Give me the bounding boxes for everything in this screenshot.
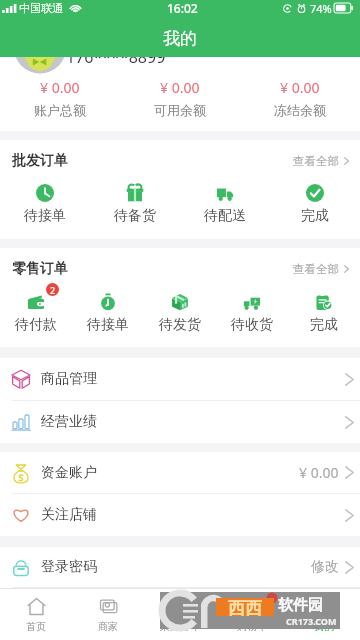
staticText: 商品管理 <box>41 370 97 388</box>
staticText: 商家 <box>98 620 118 633</box>
staticText: 待接单 <box>24 207 66 225</box>
staticText: 待备货 <box>114 207 156 225</box>
staticText: 采购订单 <box>160 620 200 633</box>
staticText: 完成 <box>301 207 329 225</box>
staticText: 关注店铺 <box>41 506 97 524</box>
staticText: 资金账户 <box>41 464 97 482</box>
button[interactable]: 购物车 <box>216 589 288 640</box>
staticText: 16:02 <box>167 0 198 16</box>
staticText: ¥ 0.00 <box>280 78 320 97</box>
button[interactable]: 我的 <box>288 589 360 640</box>
staticText: 176****8899 <box>66 46 166 68</box>
staticText: 我的 <box>163 28 197 49</box>
staticText: 2 <box>50 284 56 296</box>
staticText: 查看全部 <box>293 262 339 276</box>
button[interactable]: 查看全部 <box>293 262 349 276</box>
button[interactable]: 采购订单 <box>144 589 216 640</box>
button[interactable]: 2 <box>0 293 72 334</box>
staticText: 中国联通 <box>19 1 63 15</box>
button[interactable]: 关注店铺 <box>0 494 360 536</box>
button[interactable]: 待配送 <box>180 184 270 225</box>
staticText: 待付款 <box>15 316 57 334</box>
staticText: 待配送 <box>204 207 246 225</box>
button[interactable]: 完成 <box>288 293 360 334</box>
button[interactable]: 资金账户 <box>0 452 360 493</box>
staticText: 西西 <box>228 598 262 616</box>
staticText: 待接单 <box>87 316 129 334</box>
staticText: 首页 <box>26 620 46 633</box>
staticText: 冻结余额 <box>274 102 326 118</box>
staticText: 批发订单 <box>12 152 68 170</box>
staticText: 我的 <box>314 620 334 633</box>
button[interactable]: 商品管理 <box>0 358 360 400</box>
staticText: 完成 <box>310 316 338 334</box>
button[interactable]: 商家 <box>72 589 144 640</box>
button[interactable]: ¥ 0.00 <box>0 78 120 118</box>
button[interactable]: 待发货 <box>144 293 216 334</box>
button[interactable]: 首页 <box>0 589 72 640</box>
staticText: 软件园 <box>278 596 323 615</box>
staticText: 经营业绩 <box>41 413 97 431</box>
button[interactable]: 登录密码 <box>0 547 360 587</box>
button[interactable]: 待备货 <box>90 184 180 225</box>
staticText: ¥ 0.00 <box>40 78 80 97</box>
button[interactable]: 经营业绩 <box>0 401 360 443</box>
staticText: 可用余额 <box>154 102 206 118</box>
button[interactable]: 查看全部 <box>293 154 349 168</box>
button[interactable]: 待收货 <box>216 293 288 334</box>
button[interactable]: 待接单 <box>72 293 144 334</box>
staticText: 零售订单 <box>12 260 68 278</box>
staticText: 登录密码 <box>41 558 97 576</box>
button[interactable]: 待接单 <box>0 184 90 225</box>
button[interactable]: ¥ 0.00 <box>240 78 360 118</box>
button[interactable]: ¥ 0.00 <box>120 78 240 118</box>
staticText: 账户总额 <box>34 102 86 118</box>
staticText: CR173.COM <box>286 615 337 627</box>
staticText: 待发货 <box>159 316 201 334</box>
staticText: 修改 <box>311 558 339 576</box>
staticText: 查看全部 <box>293 154 339 168</box>
staticText: ¥ 0.00 <box>299 463 339 482</box>
button[interactable]: 完成 <box>270 184 360 225</box>
staticText: 74% <box>310 1 332 16</box>
staticText: ¥ 0.00 <box>160 78 200 97</box>
staticText: 待收货 <box>231 316 273 334</box>
staticText: 购物车 <box>237 620 267 633</box>
